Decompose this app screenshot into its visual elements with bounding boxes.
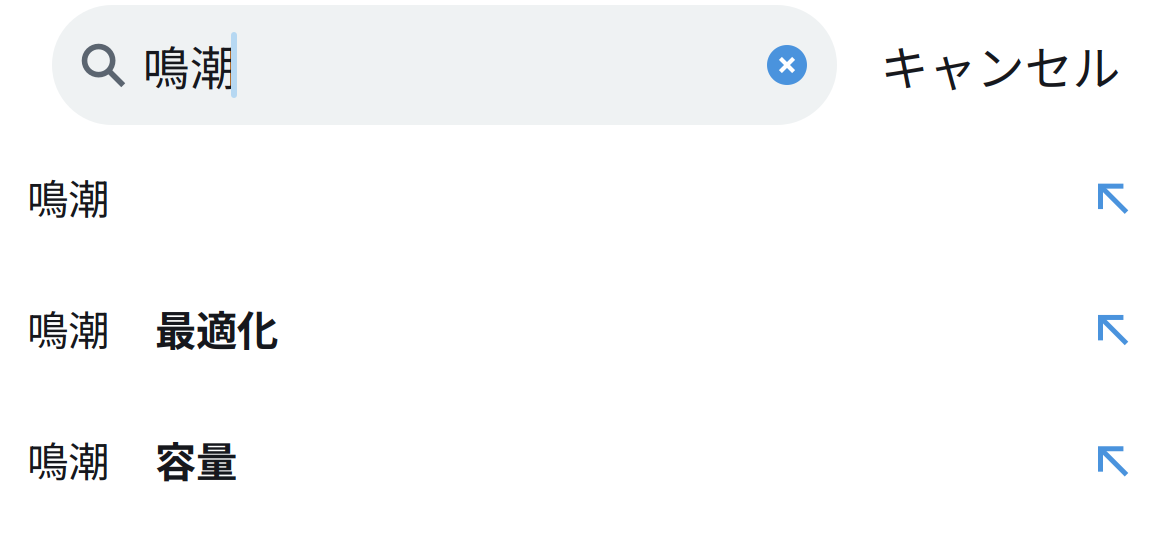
staticText: 容量 (155, 429, 237, 489)
staticText: 鳴潮 (143, 31, 237, 99)
button[interactable]: キャンセル (837, 5, 1142, 125)
button[interactable]: Search field (52, 5, 837, 125)
staticText: 鳴潮 (27, 167, 109, 227)
staticText: 鳴潮 (27, 429, 109, 489)
button[interactable]: Clear text (752, 30, 822, 100)
button[interactable]: 鳴潮 (0, 394, 1170, 525)
button[interactable]: 鳴潮 (0, 131, 1170, 262)
staticText: 最適化 (155, 298, 278, 358)
staticText: 鳴潮 (27, 298, 109, 358)
button[interactable]: 鳴潮 (0, 262, 1170, 394)
staticText: キャンセル (880, 30, 1120, 100)
